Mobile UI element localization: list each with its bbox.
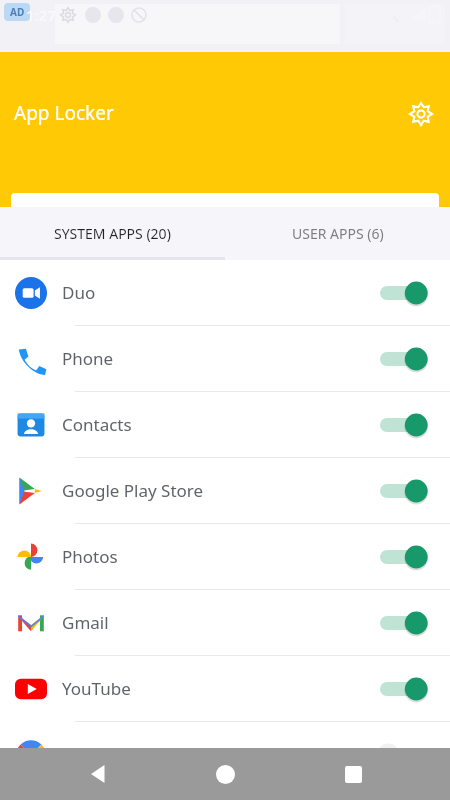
staticText: Contacts (62, 413, 132, 436)
staticText: USER APPS (6) (292, 224, 384, 243)
button[interactable]: Photos (0, 524, 450, 589)
button[interactable]: Contacts (0, 392, 450, 457)
button[interactable]: Google Play Store (0, 458, 450, 523)
button[interactable]: Duo (0, 260, 450, 325)
button[interactable]: Settings (404, 97, 438, 131)
staticText: App Locker (14, 100, 114, 126)
staticText: Google Play Store (62, 479, 204, 502)
button[interactable]: YouTube (0, 656, 450, 721)
button[interactable]: Home (190, 748, 260, 800)
button[interactable]: Maps (0, 722, 450, 787)
staticText: Maps (62, 743, 106, 766)
button[interactable]: Search Apps (11, 193, 439, 241)
staticText: Duo (62, 281, 96, 304)
button[interactable]: Back (65, 748, 135, 800)
staticText: Photos (62, 545, 118, 568)
staticText: YouTube (62, 677, 131, 700)
staticText: 1:27 (26, 5, 56, 25)
button[interactable]: Gmail (0, 590, 450, 655)
button[interactable]: Recents (318, 748, 388, 800)
staticText: Gmail (62, 611, 109, 634)
staticText: Phone (62, 347, 114, 370)
staticText: AD (10, 5, 25, 19)
button[interactable]: SYSTEM APPS (20) (0, 207, 225, 260)
staticText: SYSTEM APPS (20) (54, 224, 171, 243)
button[interactable]: Phone (0, 326, 450, 391)
button[interactable]: USER APPS (6) (225, 207, 450, 260)
